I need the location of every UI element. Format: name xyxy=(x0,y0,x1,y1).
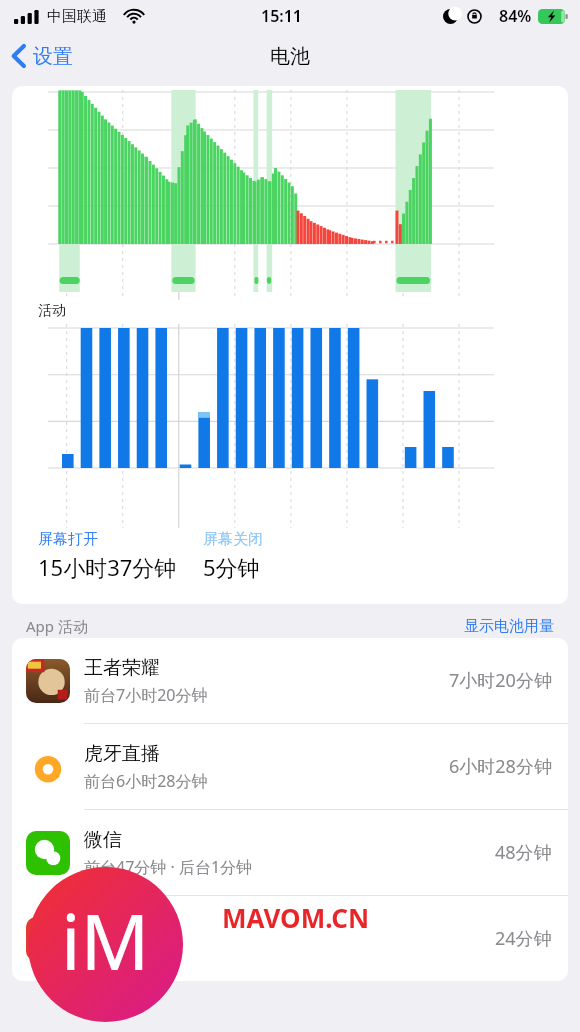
staticText: 王者荣耀 xyxy=(84,656,160,680)
staticText: 7小时20分钟 xyxy=(449,668,552,693)
staticText: 屏幕关闭 xyxy=(203,530,263,549)
button[interactable]: 显示电池用量 xyxy=(464,617,554,636)
button[interactable]: 设置 xyxy=(0,34,83,78)
button[interactable]: 王者荣耀 xyxy=(12,638,568,723)
staticText: 活动 xyxy=(38,302,66,320)
staticText: 屏幕打开 xyxy=(38,530,98,549)
staticText: 显示电池用量 xyxy=(464,617,554,636)
staticText: App 活动 xyxy=(26,616,88,636)
button[interactable]: 微信 xyxy=(12,810,568,895)
staticText: 设置 xyxy=(33,44,73,69)
staticText: 微信 xyxy=(84,828,122,852)
staticText: 中国联通 xyxy=(47,7,107,26)
staticText: iM xyxy=(61,889,150,993)
button[interactable]: 虎牙直播 xyxy=(12,724,568,809)
staticText: MAVOM.CN xyxy=(222,900,370,935)
staticText: 京东 xyxy=(84,914,122,938)
staticText: 5分钟 xyxy=(203,552,260,582)
staticText: 48分钟 xyxy=(495,840,552,865)
staticText: 前台6小时28分钟 xyxy=(84,770,208,792)
staticText: 前台24分钟 xyxy=(84,942,167,964)
staticText: 前台7小时20分钟 xyxy=(84,684,208,706)
staticText: 电池 xyxy=(270,44,310,69)
staticText: 84% xyxy=(499,5,532,27)
staticText: 24分钟 xyxy=(495,926,552,951)
button[interactable]: 京东 xyxy=(12,896,568,981)
staticText: 虎牙直播 xyxy=(84,742,160,766)
staticText: 6小时28分钟 xyxy=(449,754,552,779)
staticText: 15小时37分钟 xyxy=(38,552,177,582)
staticText: 15:11 xyxy=(261,5,303,27)
staticText: 前台47分钟 · 后台1分钟 xyxy=(84,856,253,878)
